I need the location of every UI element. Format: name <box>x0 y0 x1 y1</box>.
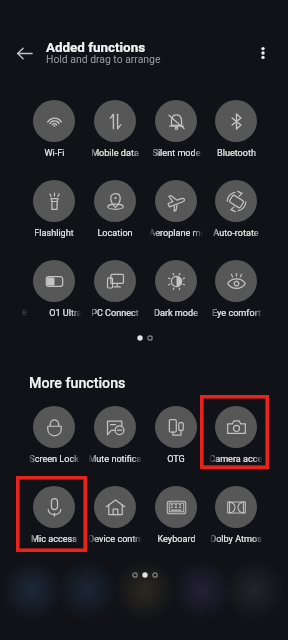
staticText: Mobile data <box>91 148 139 159</box>
button[interactable]: Device control <box>88 486 142 545</box>
button[interactable]: Dolby Atmos <box>209 486 263 545</box>
button[interactable]: Eye comfort <box>209 260 263 319</box>
staticText: Dolby Atmos <box>210 534 262 545</box>
staticText: Mute notifications <box>88 454 142 465</box>
staticText: Bluetooth <box>217 148 256 159</box>
button[interactable]: Flashlight <box>27 180 81 239</box>
button[interactable]: Mobile data <box>88 100 142 159</box>
button[interactable]: Back <box>11 40 38 67</box>
staticText: More functions <box>29 375 126 392</box>
button[interactable]: Keyboard <box>149 486 203 545</box>
button[interactable]: Highlighted <box>200 395 269 469</box>
button[interactable]: OTG <box>149 406 203 465</box>
staticText: Added functions <box>46 40 146 56</box>
staticText: Silent mode <box>152 148 201 159</box>
button[interactable]: Auto-rotate <box>209 180 263 239</box>
button[interactable]: Bluetooth <box>209 100 263 159</box>
staticText: Keyboard <box>157 534 196 545</box>
button[interactable]: Wi-Fi <box>27 100 81 159</box>
staticText: Location <box>97 228 133 239</box>
staticText: Mic access <box>31 534 77 545</box>
button[interactable]: Screen Lock <box>27 406 81 465</box>
button[interactable]: PC Connect <box>88 260 142 319</box>
button[interactable]: Dark mode <box>149 260 203 319</box>
button[interactable]: Mic access <box>27 486 81 545</box>
staticText: OTG <box>167 454 185 465</box>
staticText: Flashlight <box>34 228 74 239</box>
button[interactable]: Aeroplane mode <box>149 180 203 239</box>
staticText: Eye comfort <box>212 308 261 319</box>
staticText: Aeroplane mode <box>149 228 203 239</box>
staticText: Camera access <box>209 454 263 465</box>
staticText: Wi-Fi <box>44 148 65 159</box>
button[interactable]: O1 Ultra <box>27 260 81 319</box>
button[interactable]: More options <box>250 40 276 66</box>
staticText: Screen Lock <box>29 454 79 465</box>
staticText: PC Connect <box>91 308 139 319</box>
staticText: O1 Ultra <box>49 308 81 319</box>
staticText: Auto-rotate <box>213 228 259 239</box>
button[interactable]: Location <box>88 180 142 239</box>
button[interactable]: Camera access <box>209 406 263 465</box>
staticText: e <box>22 307 27 318</box>
staticText: Device control <box>88 534 142 545</box>
button[interactable]: Highlighted <box>16 476 87 552</box>
button[interactable]: Silent mode <box>149 100 203 159</box>
button[interactable]: Mute notifications <box>88 406 142 465</box>
staticText: Hold and drag to arrange <box>46 53 161 65</box>
staticText: Dark mode <box>154 308 198 319</box>
